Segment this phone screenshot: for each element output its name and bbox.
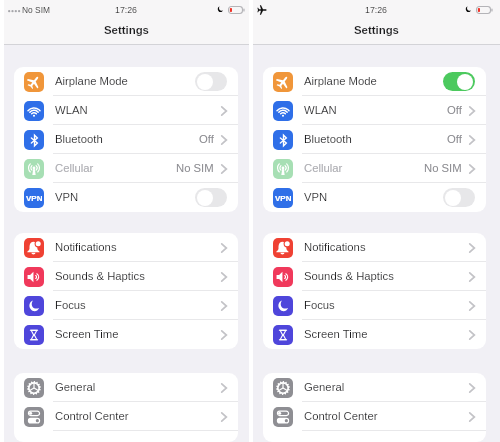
staticText: Airplane Mode [55,75,128,88]
button[interactable]: Airplane Mode [14,67,238,96]
button[interactable]: WLAN [263,96,486,125]
staticText: Focus [304,299,335,312]
staticText: VPN [304,191,328,204]
button[interactable]: WLAN [14,96,238,125]
staticText: Bluetooth [304,133,352,146]
button[interactable]: VPN [443,188,475,207]
staticText: Cellular [55,162,94,175]
staticText: General [55,381,96,394]
button[interactable]: Sounds & Haptics [263,262,486,291]
staticText: Notifications [55,241,117,254]
staticText: Off [447,133,462,146]
button[interactable]: Notifications [14,233,238,262]
button[interactable]: Focus [14,291,238,320]
button[interactable]: Focus [263,291,486,320]
staticText: Screen Time [55,328,119,341]
button[interactable]: Sounds & Haptics [14,262,238,291]
button[interactable]: Airplane Mode [443,72,475,91]
staticText: Off [447,104,462,117]
staticText: Cellular [304,162,343,175]
staticText: Sounds & Haptics [304,270,394,283]
button[interactable]: VPN [14,183,238,212]
button[interactable]: Cellular [263,154,486,183]
button[interactable]: Screen Time [263,320,486,349]
staticText: VPN [26,194,43,203]
staticText: Sounds & Haptics [55,270,145,283]
staticText: Airplane Mode [304,75,377,88]
staticText: Control Center [304,410,378,423]
staticText: Focus [55,299,86,312]
staticText: VPN [275,194,292,203]
staticText: Settings [104,24,149,37]
staticText: WLAN [304,104,337,117]
staticText: Screen Time [304,328,368,341]
button[interactable]: Airplane Mode [263,67,486,96]
staticText: No SIM [176,162,214,175]
staticText: No SIM [22,5,50,14]
button[interactable]: VPN [263,183,486,212]
staticText: WLAN [55,104,88,117]
staticText: General [304,381,345,394]
staticText: 17:26 [365,5,388,15]
button[interactable]: Control Center [263,402,486,431]
button[interactable]: Airplane Mode [195,72,227,91]
staticText: Settings [354,24,399,37]
button[interactable]: Bluetooth [14,125,238,154]
staticText: Notifications [304,241,366,254]
button[interactable]: General [14,373,238,402]
button[interactable]: Screen Time [14,320,238,349]
button[interactable]: VPN [195,188,227,207]
staticText: Bluetooth [55,133,103,146]
staticText: No SIM [424,162,462,175]
button[interactable]: Control Center [14,402,238,431]
staticText: Control Center [55,410,129,423]
staticText: Off [199,133,214,146]
staticText: VPN [55,191,79,204]
button[interactable]: Bluetooth [263,125,486,154]
staticText: 17:26 [115,5,138,15]
button[interactable]: Cellular [14,154,238,183]
button[interactable]: General [263,373,486,402]
button[interactable]: Notifications [263,233,486,262]
